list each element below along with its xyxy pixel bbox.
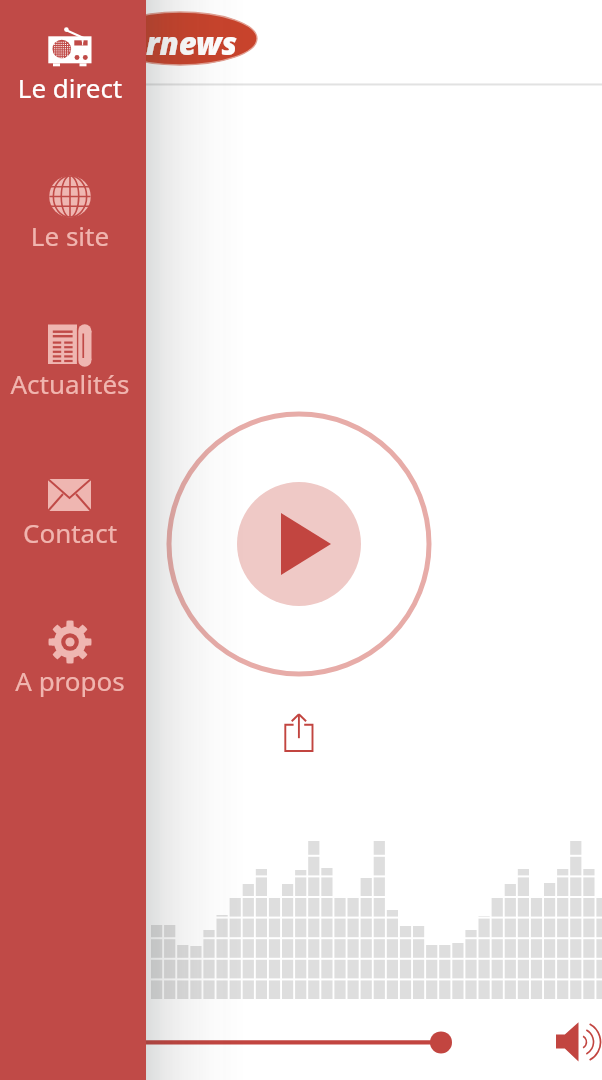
staticText: Le direct [0, 70, 143, 105]
button[interactable]: Volume [130, 1024, 470, 1060]
staticText: radiosudernews [0, 22, 238, 64]
button[interactable]: Le site [0, 160, 146, 258]
staticText: Contact [0, 515, 143, 550]
button[interactable]: Actualités [0, 308, 146, 406]
staticText: A propos [0, 663, 143, 698]
staticText: Le site [0, 218, 143, 253]
button[interactable]: Share [280, 708, 320, 748]
button[interactable]: Play [166, 411, 432, 677]
staticText: Actualités [0, 366, 143, 401]
button[interactable]: Contact [0, 457, 146, 555]
button[interactable]: Mute [550, 1018, 602, 1070]
button[interactable]: Le direct [0, 12, 146, 110]
button[interactable]: A propos [0, 605, 146, 703]
